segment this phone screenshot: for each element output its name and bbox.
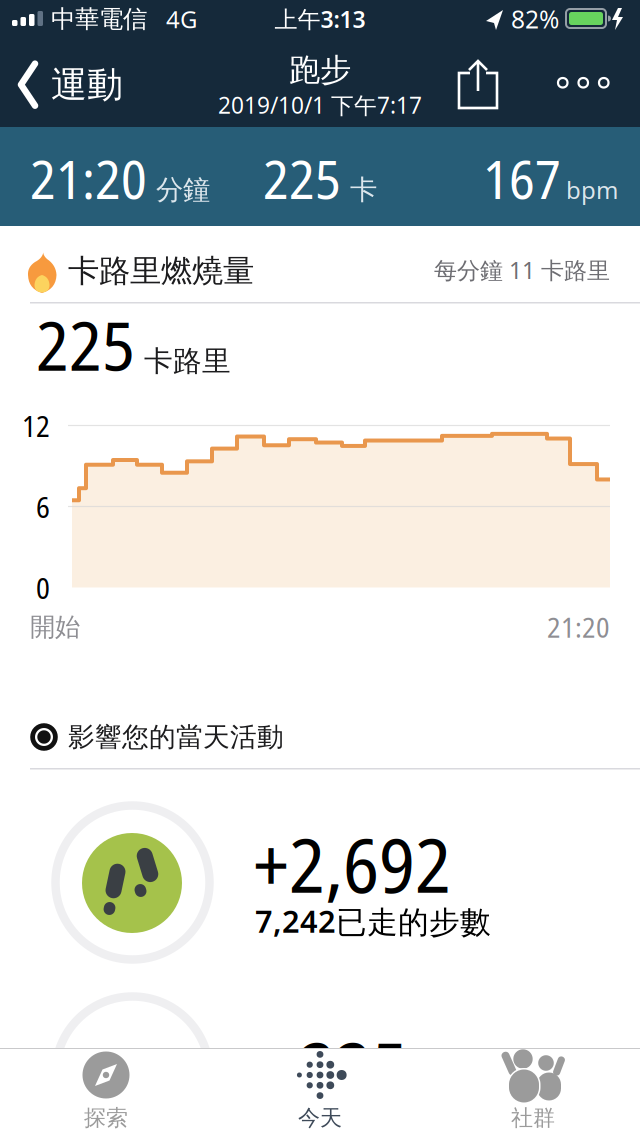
staticText: 225 bbox=[263, 142, 341, 215]
staticText: 開始 bbox=[30, 611, 80, 643]
staticText: 卡路里燃燒量 bbox=[68, 251, 254, 291]
button[interactable]: +2,692 bbox=[0, 781, 640, 971]
staticText: 167 bbox=[483, 142, 561, 215]
staticText: +2,692 bbox=[253, 813, 451, 915]
staticText: 卡 bbox=[350, 173, 377, 207]
staticText: 4G bbox=[166, 3, 197, 35]
staticText: 上午3:13 bbox=[274, 3, 365, 35]
staticText: 21:20 bbox=[30, 142, 147, 215]
button[interactable]: 今天 bbox=[213, 1048, 640, 1136]
staticText: 每分鐘 11 卡路里 bbox=[434, 254, 610, 286]
staticText: 82% bbox=[511, 2, 559, 36]
staticText: 社群 bbox=[511, 1104, 555, 1132]
staticText: 卡路里 bbox=[144, 343, 231, 379]
staticText: 6 bbox=[36, 487, 50, 526]
staticText: 今天 bbox=[298, 1104, 342, 1132]
button[interactable]: 探索 bbox=[0, 1048, 640, 1136]
staticText: 分鐘 bbox=[156, 173, 210, 207]
staticText: 21:20 bbox=[547, 608, 610, 646]
staticText: bpm bbox=[566, 173, 618, 206]
button[interactable]: +225 bbox=[0, 993, 640, 1136]
staticText: 探索 bbox=[84, 1104, 128, 1132]
staticText: 12 bbox=[22, 406, 50, 445]
staticText: 中華電信 bbox=[51, 4, 147, 34]
staticText: 影響您的當天活動 bbox=[68, 720, 284, 754]
staticText: +225 bbox=[264, 1017, 408, 1119]
staticText: 2019/10/1 下午7:17 bbox=[218, 90, 422, 120]
staticText: 跑步 bbox=[289, 50, 351, 90]
staticText: 7,242 bbox=[255, 900, 336, 942]
button[interactable]: 社群 bbox=[427, 1048, 640, 1136]
button[interactable] bbox=[459, 60, 497, 108]
staticText: 已走的步數 bbox=[336, 903, 491, 942]
staticText: 0 bbox=[36, 568, 50, 607]
button[interactable] bbox=[558, 78, 608, 87]
staticText: 225 bbox=[36, 298, 135, 391]
button[interactable]: 運動 bbox=[18, 62, 123, 107]
staticText: 運動 bbox=[51, 62, 123, 107]
